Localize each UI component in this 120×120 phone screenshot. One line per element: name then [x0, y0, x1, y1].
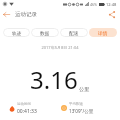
staticText: 运动时间 — [17, 102, 31, 106]
button[interactable]: 详情 — [89, 28, 117, 37]
button[interactable]: 配速 — [60, 28, 88, 37]
staticText: 00:41:33 — [17, 108, 37, 115]
staticText: 运动记录 — [15, 11, 37, 18]
staticText: 平均配速 — [69, 102, 83, 106]
button[interactable]: Share — [106, 9, 117, 20]
staticText: 46% — [90, 2, 98, 7]
staticText: 配速 — [69, 30, 79, 36]
staticText: 详情 — [98, 30, 108, 36]
staticText: 12:48 — [106, 2, 117, 7]
staticText: 13'09"/公里 — [69, 108, 94, 114]
button[interactable]: 轨迹 — [3, 28, 30, 37]
staticText: 公里 — [79, 86, 90, 93]
staticText: 2017年5月8日 21:04 — [0, 45, 120, 50]
staticText: 数据 — [40, 30, 50, 36]
staticText: 3.16 — [30, 63, 78, 96]
staticText: 轨迹 — [12, 30, 22, 36]
button[interactable]: Back — [0, 8, 13, 21]
button[interactable]: 数据 — [31, 28, 59, 37]
